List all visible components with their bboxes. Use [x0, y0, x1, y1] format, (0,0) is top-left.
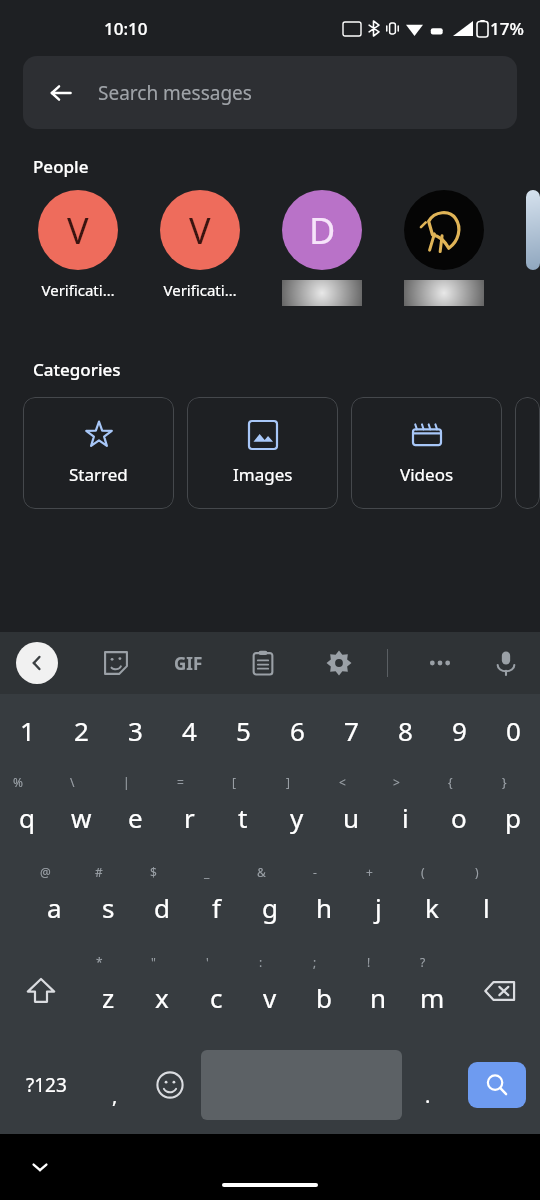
button[interactable]: = — [162, 766, 216, 856]
button[interactable]: ] — [270, 766, 324, 856]
button[interactable]: " — [135, 946, 189, 1036]
staticText: ' — [206, 954, 209, 970]
staticText: k — [425, 890, 439, 925]
button[interactable]: GIF — [174, 652, 203, 675]
staticText: D — [309, 206, 336, 255]
button[interactable]: Search — [468, 1062, 526, 1108]
button[interactable]: 3 — [108, 694, 162, 766]
button[interactable]: Contact V — [160, 190, 240, 270]
button[interactable]: @ — [27, 856, 81, 946]
staticText: - — [313, 864, 317, 880]
button[interactable]: ' — [189, 946, 243, 1036]
button[interactable]: Back — [41, 73, 81, 113]
button[interactable]: $ — [135, 856, 189, 946]
staticText: u — [343, 800, 360, 835]
button[interactable]: - — [297, 856, 351, 946]
button[interactable]: ! — [351, 946, 405, 1036]
button[interactable]: Contact — [526, 190, 540, 270]
button[interactable]: Backspace — [459, 946, 540, 1036]
button[interactable]: > — [378, 766, 432, 856]
button[interactable]: Settings — [321, 645, 357, 681]
button[interactable]: ? — [405, 946, 459, 1036]
staticText: e — [128, 800, 143, 835]
button[interactable]: ; — [297, 946, 351, 1036]
button[interactable]: Expand — [16, 642, 58, 684]
button[interactable]: 9 — [432, 694, 486, 766]
staticText: $ — [150, 864, 157, 880]
button[interactable]: : — [243, 946, 297, 1036]
staticText: t — [238, 800, 248, 835]
button[interactable]: Images — [187, 397, 338, 509]
staticText: 17% — [490, 17, 524, 40]
staticText: j — [375, 890, 382, 925]
button[interactable]: ?123 — [0, 1036, 92, 1134]
button[interactable]: 1 — [0, 694, 54, 766]
button[interactable]: Videos — [351, 397, 502, 509]
button[interactable]: Starred — [23, 397, 174, 509]
button[interactable]: 0 — [486, 694, 540, 766]
button[interactable]: _ — [189, 856, 243, 946]
button[interactable]: < — [324, 766, 378, 856]
staticText: ?123 — [26, 1072, 67, 1098]
staticText: f — [212, 890, 221, 925]
staticText: 8 — [398, 713, 413, 748]
button[interactable]: Hide keyboard — [22, 1149, 58, 1185]
staticText: 0 — [506, 713, 521, 748]
button[interactable]: \ — [54, 766, 108, 856]
staticText: ! — [367, 954, 371, 970]
staticText: v — [263, 980, 277, 1015]
button[interactable]: % — [0, 766, 54, 856]
staticText: & — [257, 864, 266, 880]
button[interactable]: Back — [23, 56, 517, 129]
staticText: c — [210, 980, 223, 1015]
staticText: Verificatio… — [38, 280, 118, 300]
button[interactable]: Contact V — [38, 190, 118, 270]
button[interactable]: Emoji — [138, 1036, 201, 1134]
staticText: Search messages — [98, 80, 252, 106]
button[interactable]: Voice input — [488, 645, 524, 681]
staticText: l — [483, 890, 490, 925]
staticText: 5 — [236, 713, 251, 748]
button[interactable]: Shift — [0, 946, 81, 1036]
button[interactable]: ( — [405, 856, 459, 946]
staticText: # — [95, 864, 103, 880]
button[interactable]: Contact avatar — [404, 190, 484, 270]
button[interactable]: 7 — [324, 694, 378, 766]
staticText: GIF — [174, 652, 203, 675]
button[interactable]: # — [81, 856, 135, 946]
staticText: o — [451, 800, 467, 835]
button[interactable]: * — [81, 946, 135, 1036]
button[interactable]: [ — [216, 766, 270, 856]
button[interactable]: 6 — [270, 694, 324, 766]
button[interactable]: | — [108, 766, 162, 856]
button[interactable]: 8 — [378, 694, 432, 766]
button[interactable]: , — [92, 1036, 138, 1134]
button[interactable]: { — [432, 766, 486, 856]
staticText: s — [102, 890, 115, 925]
button[interactable]: + — [351, 856, 405, 946]
button[interactable]: ) — [459, 856, 513, 946]
staticText: 6 — [290, 713, 305, 748]
button[interactable]: 5 — [216, 694, 270, 766]
staticText: q — [19, 800, 35, 835]
button[interactable]: . — [402, 1036, 454, 1134]
button[interactable]: & — [243, 856, 297, 946]
button[interactable]: 2 — [54, 694, 108, 766]
staticText: i — [402, 800, 409, 835]
button[interactable]: } — [486, 766, 540, 856]
button[interactable]: Contact D — [282, 190, 362, 270]
staticText: d — [154, 890, 170, 925]
button[interactable]: More options — [422, 645, 458, 681]
staticText: z — [102, 980, 115, 1015]
staticText: ) — [475, 864, 479, 880]
button[interactable] — [515, 397, 540, 509]
staticText: 1 — [20, 713, 35, 748]
button[interactable]: 4 — [162, 694, 216, 766]
staticText: r — [184, 800, 195, 835]
staticText: ] — [286, 774, 290, 790]
staticText: w — [71, 800, 92, 835]
button[interactable]: Clipboard — [245, 645, 281, 681]
button[interactable]: Stickers — [98, 645, 134, 681]
staticText: Categories — [33, 358, 121, 381]
